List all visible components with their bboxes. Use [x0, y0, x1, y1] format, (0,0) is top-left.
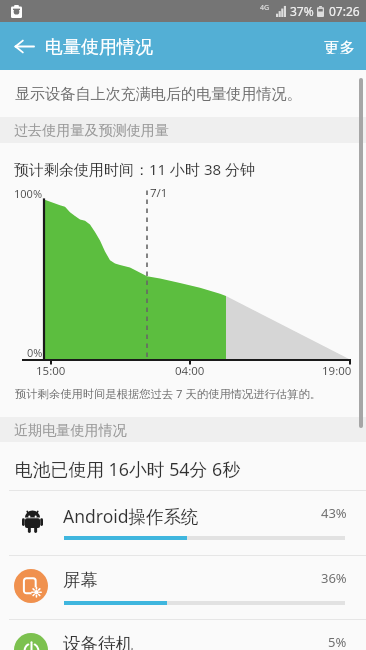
staticText: Android操作系统 [63, 504, 199, 528]
staticText: 屏幕 [63, 569, 98, 591]
staticText: 电池已使用 16小时 54分 6秒 [15, 457, 240, 481]
staticText: 预计剩余使用时间：11 小时 38 分钟 [14, 159, 256, 179]
staticText: 100% [14, 186, 43, 201]
button[interactable]: Android操作系统 [0, 491, 366, 555]
button[interactable]: Back [0, 22, 48, 70]
staticText: 设备待机 [63, 633, 133, 650]
staticText: 电量使用情况 [45, 36, 153, 59]
staticText: 近期电量使用情况 [14, 421, 127, 439]
staticText: 36% [321, 569, 347, 587]
staticText: 43% [321, 504, 347, 522]
staticText: 37% [290, 3, 314, 19]
staticText: 显示设备自上次充满电后的电量使用情况。 [15, 84, 302, 103]
staticText: 19:00 [322, 363, 352, 379]
button[interactable]: 屏幕 [0, 556, 366, 620]
staticText: 15:00 [36, 363, 66, 379]
staticText: 更多 [324, 38, 355, 54]
button[interactable]: 设备待机 [0, 620, 366, 650]
staticText: 预计剩余使用时间是根据您过去 7 天的使用情况进行估算的。 [15, 386, 322, 401]
staticText: 4G [260, 3, 270, 13]
staticText: 5% [328, 633, 347, 650]
staticText: 0% [27, 345, 43, 360]
staticText: 过去使用量及预测使用量 [14, 121, 170, 139]
staticText: 07:26 [329, 3, 360, 19]
staticText: 04:00 [175, 363, 205, 379]
button[interactable]: 更多 [308, 22, 366, 70]
staticText: 7/1 [150, 185, 168, 201]
